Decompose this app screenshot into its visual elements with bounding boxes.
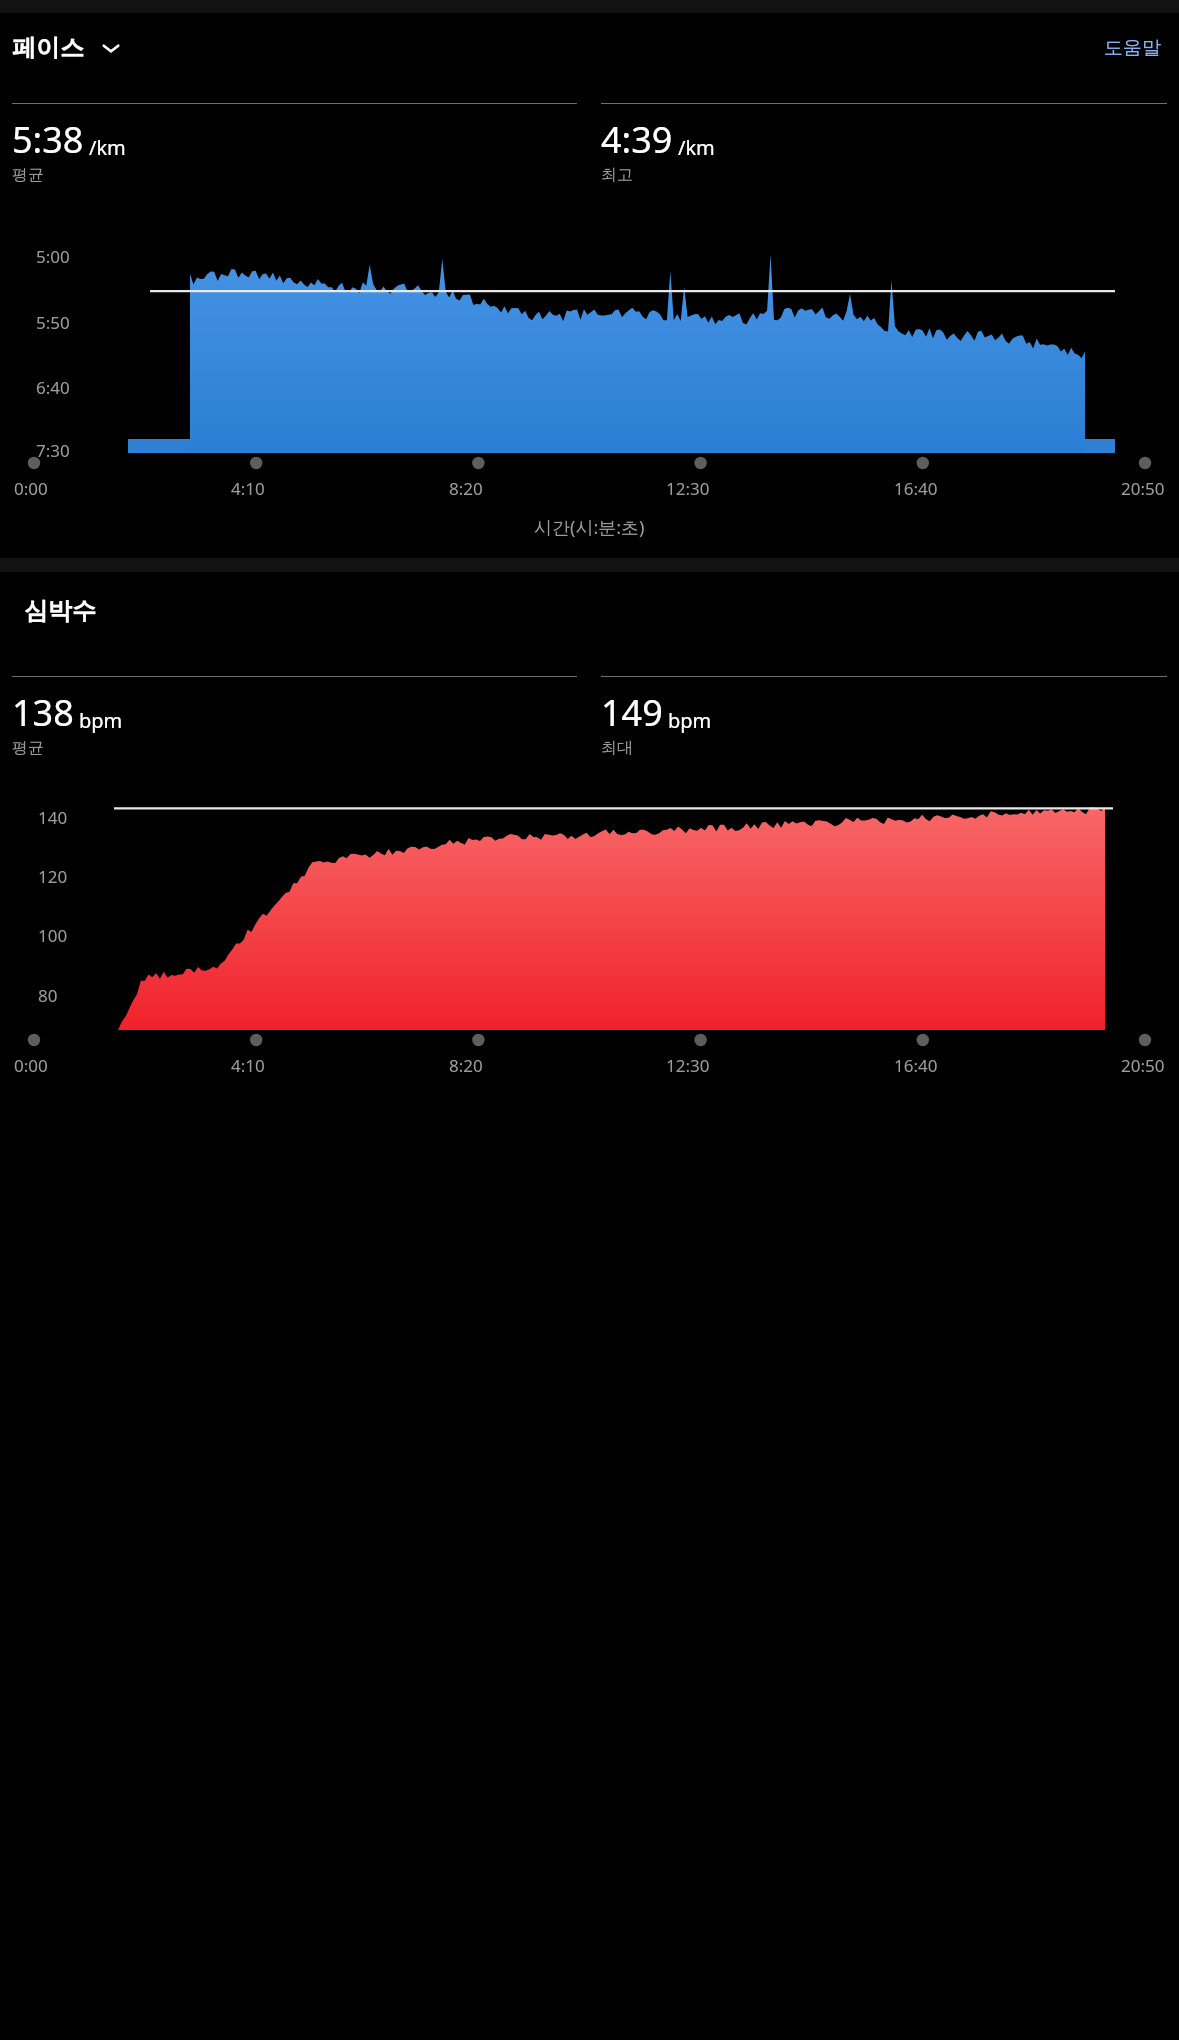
staticText: /km — [678, 134, 715, 161]
staticText: 80 — [38, 984, 58, 1007]
staticText: 12:30 — [666, 1054, 710, 1077]
staticText: 100 — [38, 924, 68, 947]
staticText: 0:00 — [14, 1054, 48, 1077]
staticText: 최고 — [601, 165, 633, 185]
staticText: 7:30 — [36, 439, 70, 462]
staticText: 4:10 — [231, 477, 265, 500]
staticText: 4:39 — [601, 115, 673, 164]
staticText: 5:00 — [36, 245, 70, 268]
staticText: 평균 — [12, 738, 44, 758]
staticText: 16:40 — [894, 477, 938, 500]
button[interactable]: 도움말 — [1098, 30, 1167, 66]
staticText: 4:10 — [231, 1054, 265, 1077]
button[interactable]: 페이스 — [12, 33, 124, 63]
staticText: /km — [89, 134, 126, 161]
staticText: 심박수 — [24, 596, 96, 626]
staticText: bpm — [79, 707, 123, 734]
staticText: 138 — [12, 688, 74, 737]
staticText: 20:50 — [1121, 1054, 1165, 1077]
staticText: bpm — [668, 707, 712, 734]
staticText: 최대 — [601, 738, 633, 758]
staticText: 0:00 — [14, 477, 48, 500]
staticText: 8:20 — [449, 1054, 483, 1077]
staticText: 페이스 — [12, 33, 84, 63]
staticText: 20:50 — [1121, 477, 1165, 500]
staticText: 149 — [601, 688, 663, 737]
staticText: 16:40 — [894, 1054, 938, 1077]
staticText: 5:50 — [36, 311, 70, 334]
staticText: 12:30 — [666, 477, 710, 500]
staticText: 6:40 — [36, 376, 70, 399]
staticText: 8:20 — [449, 477, 483, 500]
staticText: 시간(시:분:초) — [534, 515, 645, 540]
staticText: 평균 — [12, 165, 44, 185]
staticText: 120 — [38, 865, 68, 888]
staticText: 140 — [38, 806, 68, 829]
staticText: 5:38 — [12, 115, 84, 164]
